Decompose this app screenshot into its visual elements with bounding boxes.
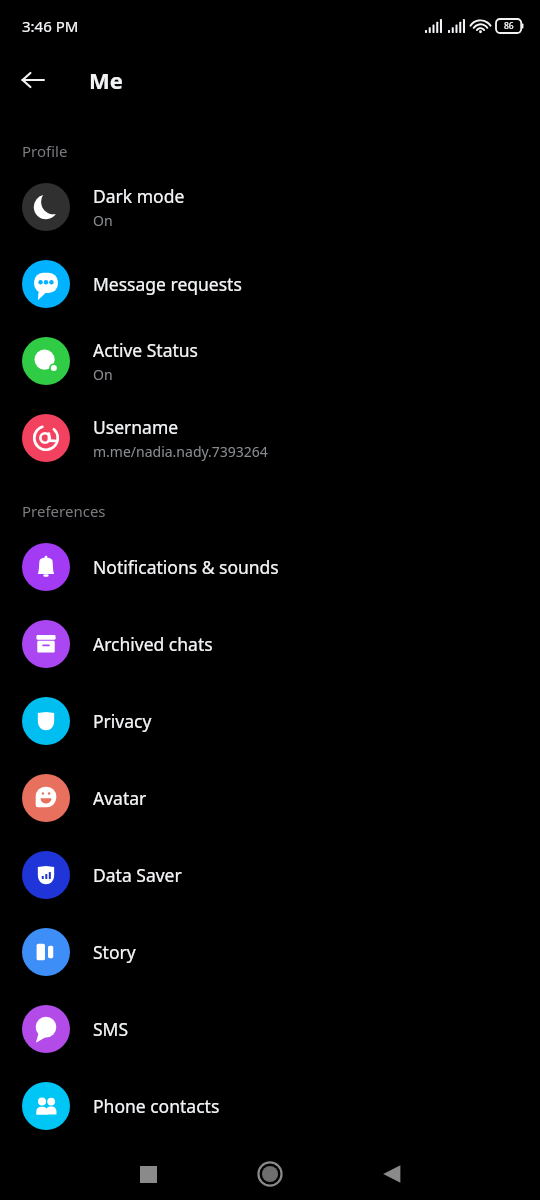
button[interactable]: Privacy (0, 682, 540, 759)
staticText: 3:46 PM (22, 16, 79, 36)
staticText: 86 (504, 20, 514, 32)
staticText: On (93, 211, 113, 230)
staticText: Message requests (93, 272, 242, 296)
staticText: m.me/nadia.nady.7393264 (93, 442, 268, 461)
button[interactable]: Back (10, 57, 56, 103)
staticText: Story (93, 940, 136, 964)
staticText: Data Saver (93, 863, 182, 887)
button[interactable]: SMS (0, 990, 540, 1067)
button[interactable]: Home (246, 1150, 294, 1198)
staticText: On (93, 365, 113, 384)
staticText: Preferences (22, 501, 106, 521)
staticText: SMS (93, 1017, 129, 1041)
staticText: Profile (22, 141, 68, 161)
button[interactable]: Archived chats (0, 605, 540, 682)
staticText: Phone contacts (93, 1094, 220, 1118)
staticText: Archived chats (93, 632, 213, 656)
staticText: Active Status (93, 338, 198, 362)
button[interactable]: Data Saver (0, 836, 540, 913)
staticText: Avatar (93, 786, 147, 810)
staticText: Privacy (93, 709, 152, 733)
button[interactable]: Notifications & sounds (0, 528, 540, 605)
button[interactable]: Dark mode (0, 168, 540, 245)
button[interactable]: Back (368, 1150, 416, 1198)
button[interactable]: Recents (124, 1150, 172, 1198)
staticText: Me (89, 65, 123, 95)
staticText: Username (93, 415, 179, 439)
button[interactable]: Active Status (0, 322, 540, 399)
button[interactable]: Story (0, 913, 540, 990)
staticText: Dark mode (93, 184, 185, 208)
button[interactable]: Avatar (0, 759, 540, 836)
button[interactable]: Message requests (0, 245, 540, 322)
button[interactable]: Phone contacts (0, 1067, 540, 1144)
button[interactable]: Username (0, 399, 540, 476)
staticText: Notifications & sounds (93, 555, 279, 579)
